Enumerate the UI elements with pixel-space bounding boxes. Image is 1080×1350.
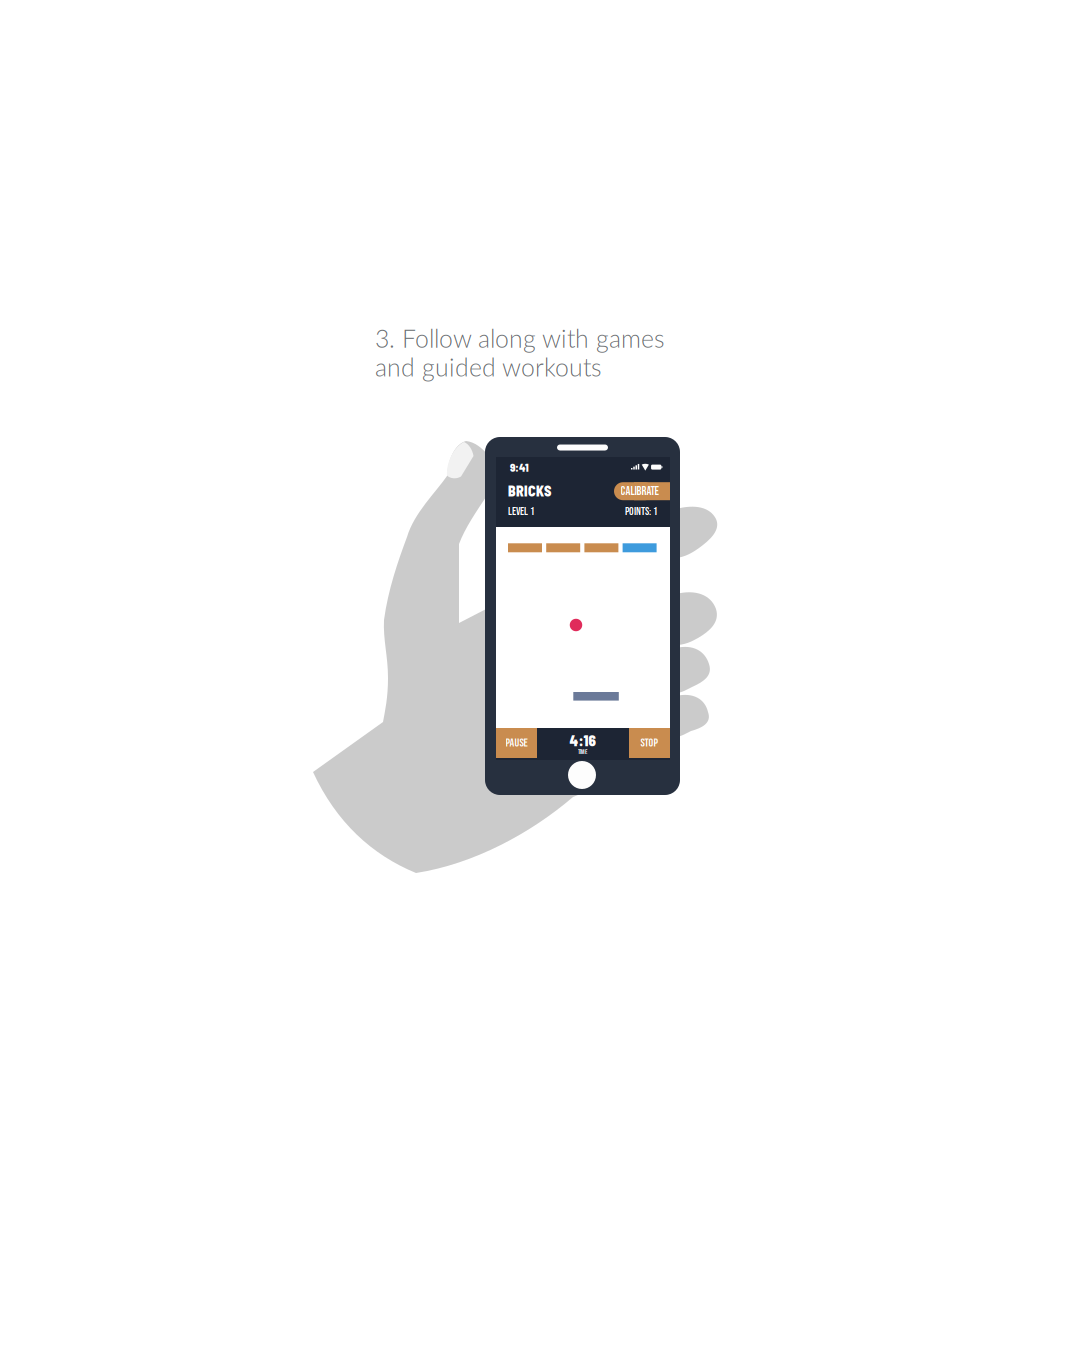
button[interactable]: PAUSE [496,728,537,758]
button[interactable]: CALIBRATE [614,482,670,500]
staticText: and guided workouts [375,352,602,382]
staticText: PAUSE [505,736,527,750]
staticText: 9:41 [510,461,529,474]
staticText: TIME [578,748,587,756]
staticText: BRICKS [508,483,551,499]
staticText: 3. Follow along with games [375,323,665,353]
button[interactable]: STOP [629,728,670,758]
staticText: LEVEL 1 [508,505,535,518]
staticText: 4:16 [569,732,595,749]
staticText: POINTS: 1 [625,505,658,518]
staticText: CALIBRATE [620,484,658,498]
staticText: STOP [640,736,658,750]
